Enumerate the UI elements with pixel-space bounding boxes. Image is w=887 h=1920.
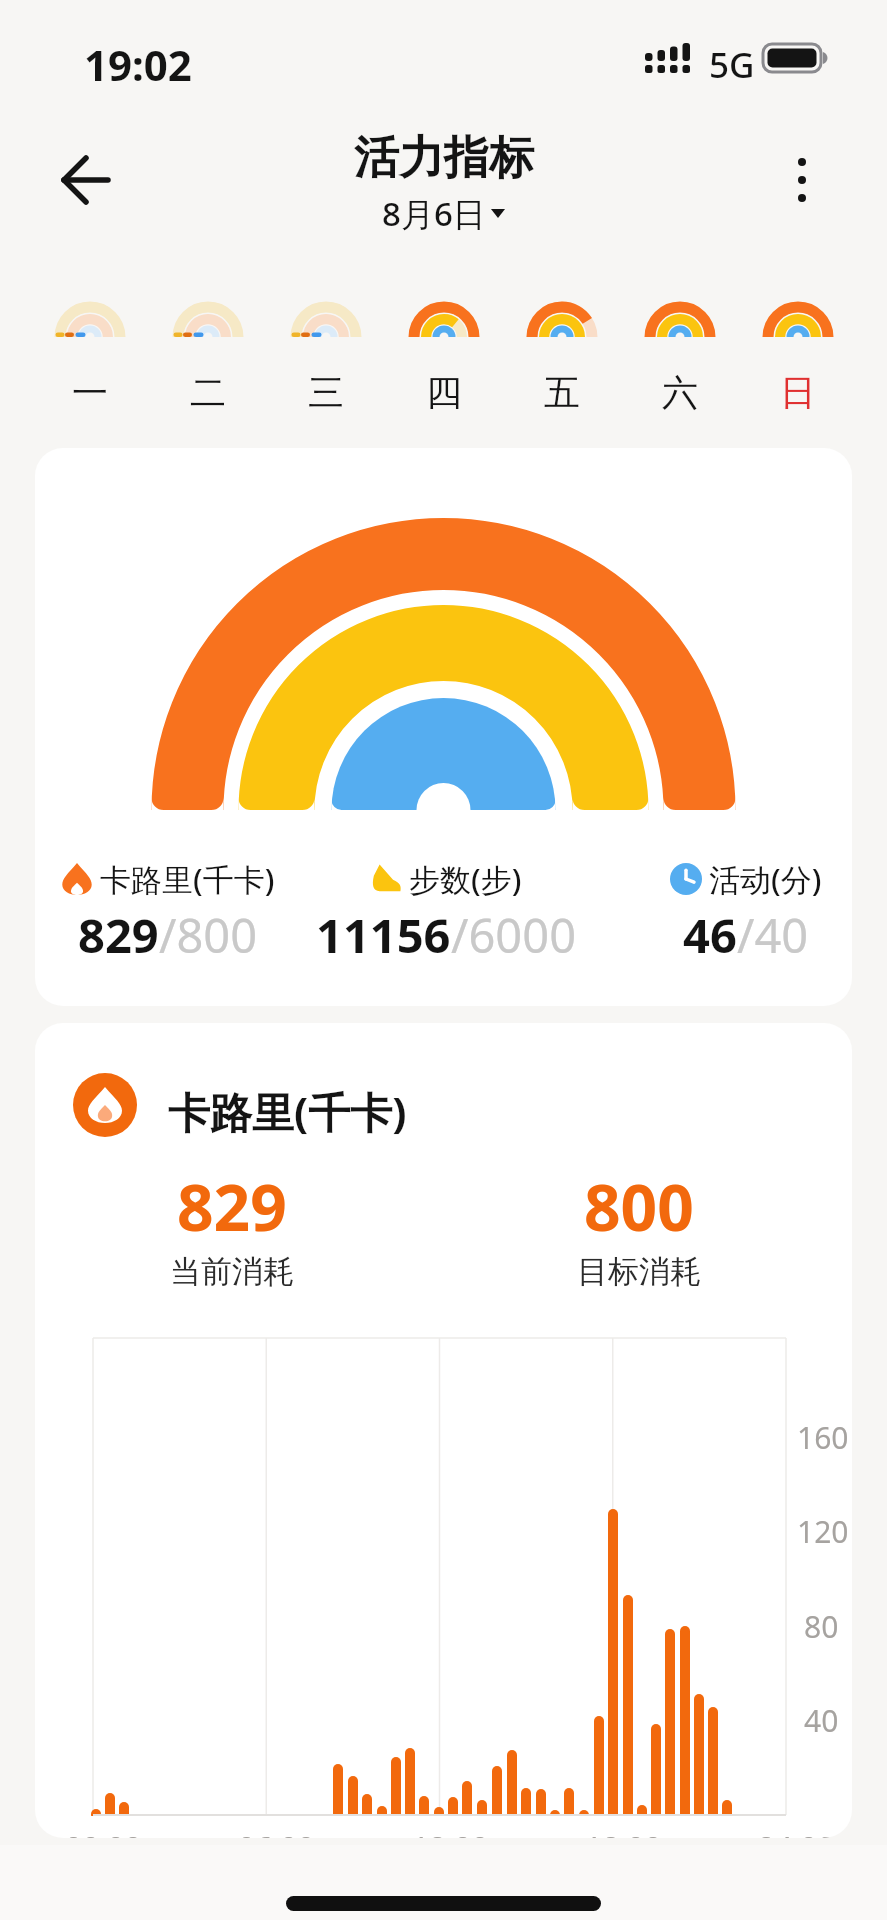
staticText: 六 bbox=[662, 370, 698, 415]
staticText: 829 bbox=[177, 1163, 287, 1250]
staticText: 19:02 bbox=[84, 36, 192, 93]
staticText: 24:00 bbox=[758, 1827, 835, 1838]
staticText: 800 bbox=[584, 1163, 694, 1250]
staticText: 80 bbox=[804, 1606, 839, 1647]
button[interactable]: 二 bbox=[149, 296, 267, 415]
button[interactable] bbox=[50, 150, 122, 210]
staticText: 11156 bbox=[316, 903, 451, 967]
button[interactable]: 日 bbox=[739, 296, 857, 415]
staticText: /6000 bbox=[451, 903, 577, 967]
staticText: 卡路里(千卡) bbox=[168, 1083, 407, 1140]
staticText: 活动(分) bbox=[709, 858, 822, 900]
button[interactable]: 四 bbox=[385, 296, 503, 415]
staticText: 日 bbox=[780, 370, 816, 415]
staticText: 829 bbox=[78, 903, 159, 967]
staticText: 12:00 bbox=[412, 1827, 489, 1838]
button[interactable] bbox=[770, 140, 834, 220]
staticText: 三 bbox=[308, 370, 344, 415]
button[interactable]: 三 bbox=[267, 296, 385, 415]
staticText: 18:00 bbox=[585, 1827, 662, 1838]
staticText: 06:00 bbox=[238, 1827, 315, 1838]
staticText: /800 bbox=[159, 903, 258, 967]
staticText: /40 bbox=[737, 903, 809, 967]
staticText: 卡路里(千卡) bbox=[100, 858, 275, 900]
button[interactable]: 六 bbox=[621, 296, 739, 415]
button[interactable]: 五 bbox=[503, 296, 621, 415]
staticText: 四 bbox=[426, 370, 462, 415]
staticText: 步数(步) bbox=[409, 858, 522, 900]
staticText: 二 bbox=[190, 370, 226, 415]
staticText: 5G bbox=[709, 41, 755, 89]
staticText: 五 bbox=[544, 370, 580, 415]
staticText: 40 bbox=[804, 1700, 839, 1741]
staticText: 160 bbox=[797, 1417, 849, 1458]
staticText: 46 bbox=[683, 903, 737, 967]
staticText: 一 bbox=[72, 370, 108, 415]
button[interactable]: 一 bbox=[31, 296, 149, 415]
button[interactable]: 8月6日 bbox=[382, 191, 505, 236]
staticText: 8月6日 bbox=[382, 191, 486, 236]
staticText: 活力指标 bbox=[354, 130, 534, 187]
staticText: 00:00 bbox=[65, 1827, 142, 1838]
staticText: 目标消耗 bbox=[577, 1252, 701, 1291]
staticText: 120 bbox=[797, 1511, 849, 1552]
staticText: 当前消耗 bbox=[170, 1252, 294, 1291]
